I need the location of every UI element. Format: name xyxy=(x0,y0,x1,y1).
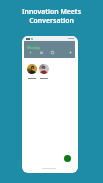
button[interactable]: Status xyxy=(49,49,55,55)
button[interactable]: Contact xyxy=(27,64,37,79)
button[interactable]: Camera xyxy=(27,49,33,55)
button[interactable]: New chat xyxy=(64,155,71,162)
staticText: Innovation Meets Conversation xyxy=(0,7,103,25)
button[interactable]: Meta AI xyxy=(67,49,73,55)
button[interactable]: Chats xyxy=(38,49,44,55)
button[interactable]: Contact xyxy=(39,64,49,79)
staticText: WhatsApp xyxy=(27,46,41,50)
